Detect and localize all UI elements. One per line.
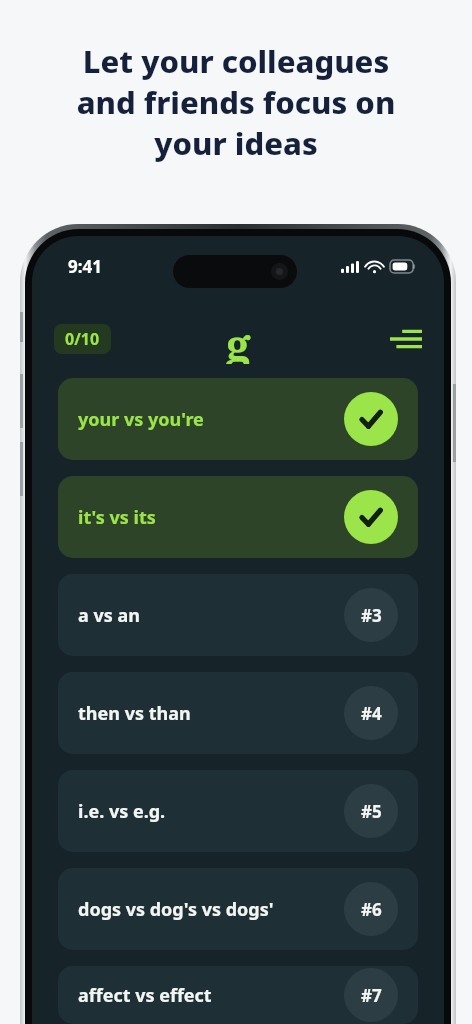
staticText: a vs an — [78, 603, 140, 628]
staticText: #7 — [361, 984, 382, 1007]
staticText: Let your colleagues and friends focus on… — [26, 40, 446, 164]
staticText: #3 — [361, 604, 382, 627]
button[interactable]: it's vs its — [58, 476, 418, 558]
button[interactable]: a vs an — [58, 574, 418, 656]
staticText: your vs you're — [78, 407, 204, 432]
button[interactable]: dogs vs dog's vs dogs' — [58, 868, 418, 950]
staticText: 9:41 — [68, 255, 102, 278]
staticText: then vs than — [78, 701, 191, 726]
staticText: #4 — [361, 702, 382, 725]
staticText: g — [226, 314, 251, 364]
staticText: dogs vs dog's vs dogs' — [78, 897, 274, 922]
staticText: #5 — [361, 800, 382, 823]
staticText: i.e. vs e.g. — [78, 799, 166, 824]
button[interactable]: Menu — [384, 317, 428, 361]
staticText: it's vs its — [78, 505, 156, 530]
button[interactable]: then vs than — [58, 672, 418, 754]
staticText: affect vs effect — [78, 983, 212, 1008]
staticText: 0/10 — [65, 328, 100, 350]
staticText: #6 — [361, 898, 382, 921]
button[interactable]: i.e. vs e.g. — [58, 770, 418, 852]
button[interactable]: g — [216, 314, 261, 364]
button[interactable]: your vs you're — [58, 378, 418, 460]
button[interactable]: 0/10 — [54, 324, 111, 354]
button[interactable]: affect vs effect — [58, 966, 418, 1024]
